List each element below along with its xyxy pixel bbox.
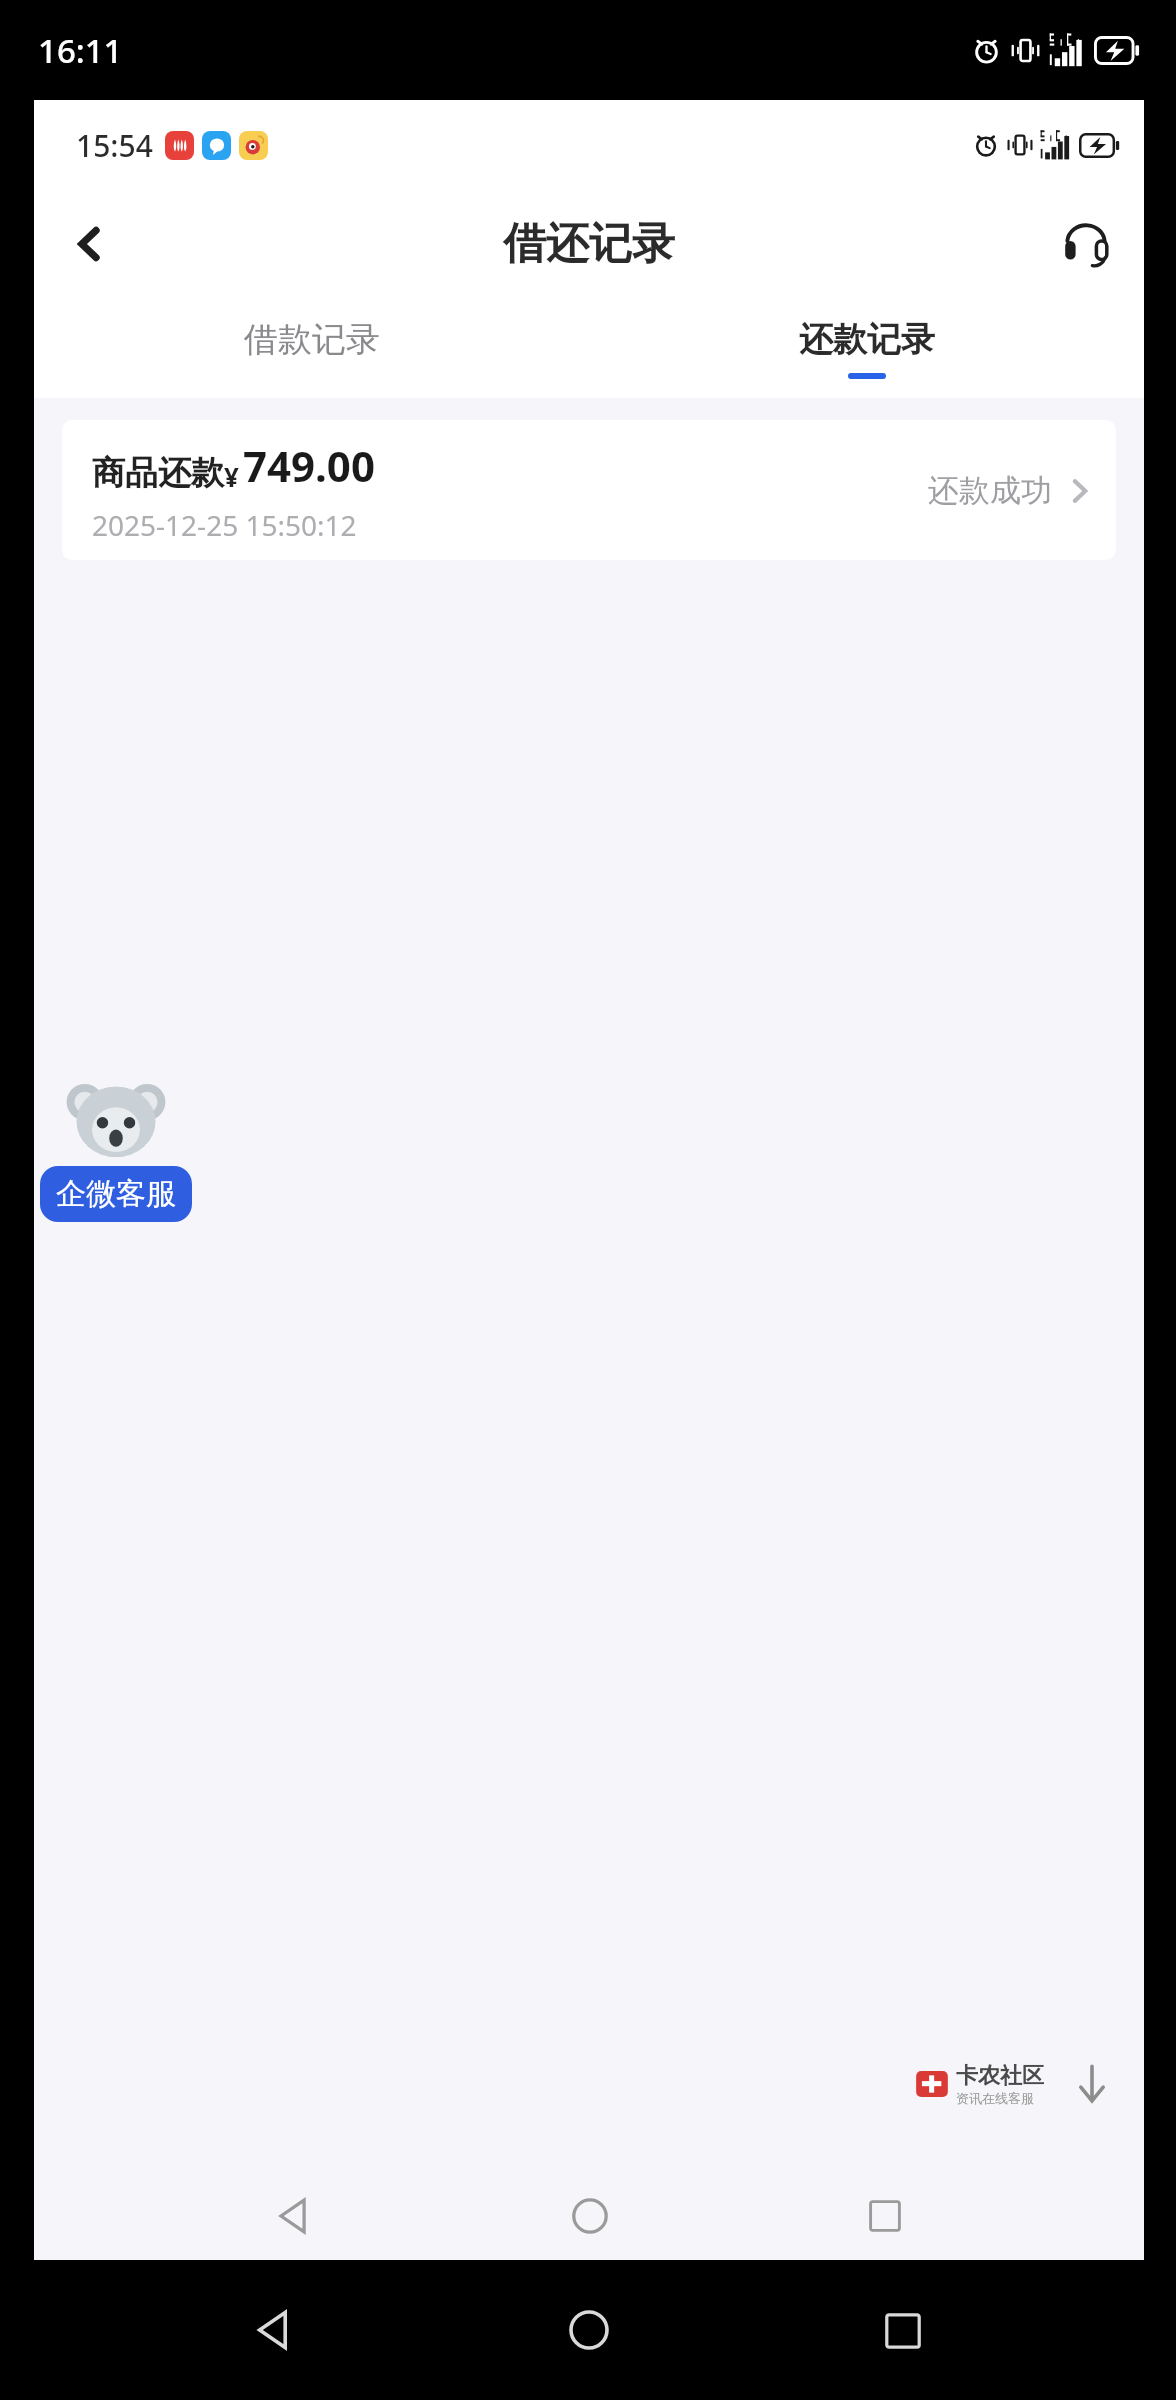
staticText: 借款记录 bbox=[244, 318, 380, 361]
staticText: 商品还款 bbox=[92, 452, 224, 494]
button[interactable]: 借款记录 bbox=[34, 298, 589, 398]
button[interactable]: Home bbox=[549, 2290, 629, 2370]
button[interactable]: Customer service bbox=[1048, 206, 1124, 282]
button[interactable]: 还款记录 bbox=[589, 298, 1144, 398]
staticText: 16:11 bbox=[38, 28, 123, 73]
button[interactable]: Back bbox=[52, 206, 128, 282]
button[interactable]: Back bbox=[234, 2290, 314, 2370]
staticText: 还款成功 bbox=[928, 471, 1052, 510]
button[interactable]: 企微客服 bbox=[40, 1166, 192, 1222]
button[interactable]: Recents bbox=[850, 2181, 920, 2251]
staticText: 2025-12-25 15:50:12 bbox=[92, 506, 357, 544]
button[interactable]: Recents bbox=[863, 2291, 942, 2370]
staticText: 借还记录 bbox=[503, 217, 675, 271]
staticText: 还款记录 bbox=[799, 318, 935, 361]
staticText: 资讯在线客服 bbox=[956, 2090, 1034, 2106]
staticText: 卡农社区 bbox=[956, 2062, 1044, 2090]
staticText: 749.00 bbox=[243, 437, 375, 494]
staticText: 企微客服 bbox=[56, 1175, 176, 1213]
staticText: ¥ bbox=[224, 459, 239, 494]
button[interactable]: Back bbox=[258, 2180, 330, 2252]
button[interactable]: 商品还款 bbox=[62, 420, 1116, 560]
staticText: 15:54 bbox=[76, 125, 153, 166]
button[interactable]: Home bbox=[554, 2180, 626, 2252]
button[interactable]: Scroll down bbox=[1060, 2052, 1124, 2116]
